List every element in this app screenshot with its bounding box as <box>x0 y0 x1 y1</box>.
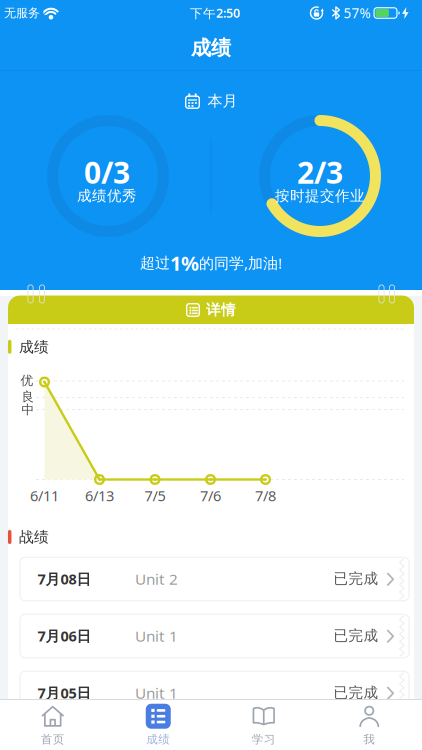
staticText: Unit 2 <box>135 568 178 589</box>
button[interactable]: 我 <box>324 701 414 749</box>
staticText: 学习 <box>252 732 276 747</box>
staticText: 的同学,加油! <box>199 253 282 273</box>
staticText: 按时提交作业 <box>275 187 365 205</box>
button[interactable]: 7月05日 <box>19 671 409 715</box>
staticText: 良 <box>21 389 34 405</box>
staticText: 成绩 <box>191 35 231 61</box>
staticText: 我 <box>363 732 375 747</box>
staticText: 成绩优秀 <box>77 187 137 205</box>
staticText: 本月 <box>207 92 237 110</box>
staticText: 中 <box>21 402 34 418</box>
staticText: 超过 <box>140 254 170 272</box>
staticText: Unit 1 <box>135 625 178 646</box>
staticText: 下午2:50 <box>190 4 240 21</box>
staticText: 已完成 <box>333 684 378 702</box>
staticText: 优 <box>20 372 33 388</box>
staticText: 7月06日 <box>37 626 91 646</box>
staticText: 1% <box>170 249 199 277</box>
button[interactable]: 7月08日 <box>19 557 409 601</box>
staticText: 已完成 <box>333 627 378 645</box>
button[interactable]: 本月 <box>184 92 237 110</box>
staticText: 7月05日 <box>37 683 91 703</box>
staticText: 7/8 <box>255 486 276 505</box>
staticText: 首页 <box>41 732 65 747</box>
staticText: 详情 <box>206 301 236 319</box>
button[interactable]: 7月06日 <box>19 614 409 658</box>
staticText: 战绩 <box>19 528 49 546</box>
staticText: 成绩 <box>19 338 49 356</box>
staticText: 已完成 <box>333 570 378 588</box>
staticText: 2/3 <box>297 152 343 192</box>
staticText: 6/11 <box>30 486 59 505</box>
button[interactable]: 成绩 <box>113 701 203 749</box>
staticText: Unit 1 <box>135 682 178 703</box>
staticText: 0/3 <box>84 152 130 192</box>
staticText: 无服务 <box>4 5 40 20</box>
staticText: 57% <box>343 4 370 22</box>
staticText: 7月08日 <box>37 569 91 589</box>
staticText: 7/5 <box>144 486 165 505</box>
button[interactable]: 学习 <box>219 701 309 749</box>
staticText: 成绩 <box>146 732 170 747</box>
button[interactable]: 首页 <box>8 701 98 749</box>
staticText: 7/6 <box>200 486 221 505</box>
staticText: 6/13 <box>85 486 114 505</box>
